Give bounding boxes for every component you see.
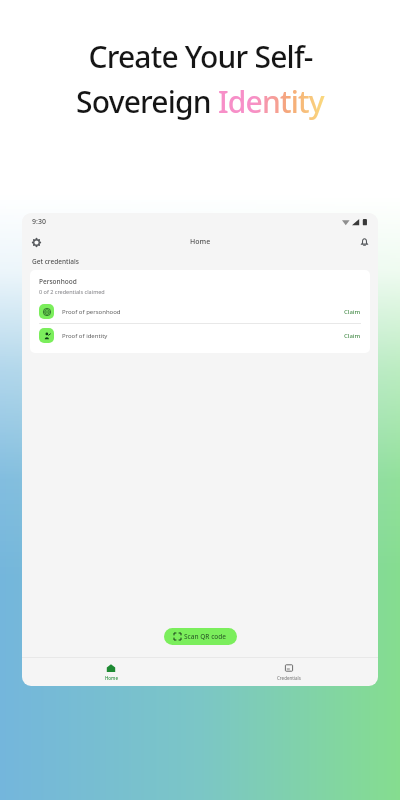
staticText: Scan QR code (184, 632, 227, 641)
staticText: Personhood (39, 277, 77, 286)
staticText: Claim (344, 308, 361, 316)
staticText: Credentials (277, 675, 301, 681)
button[interactable]: Settings (27, 233, 45, 251)
button[interactable]: Home (22, 658, 200, 686)
staticText: Identity (218, 81, 324, 122)
button[interactable]: Scan QR code (164, 628, 237, 645)
button[interactable]: Notifications (355, 233, 373, 251)
staticText: Proof of personhood (62, 308, 121, 316)
staticText: Home (190, 237, 211, 247)
button[interactable]: Proof of personhood (30, 300, 370, 323)
staticText: Create Your Self- (88, 36, 313, 77)
staticText: Home (105, 675, 118, 681)
button[interactable]: Proof of identity (30, 324, 370, 347)
staticText: Sovereign (76, 81, 218, 122)
staticText: Claim (344, 332, 361, 340)
button[interactable]: Credentials (200, 658, 378, 686)
staticText: Get credentials (32, 257, 79, 266)
staticText: 9:30 (32, 217, 46, 227)
staticText: 0 of 2 credentials claimed (39, 288, 105, 295)
staticText: Proof of identity (62, 332, 108, 340)
